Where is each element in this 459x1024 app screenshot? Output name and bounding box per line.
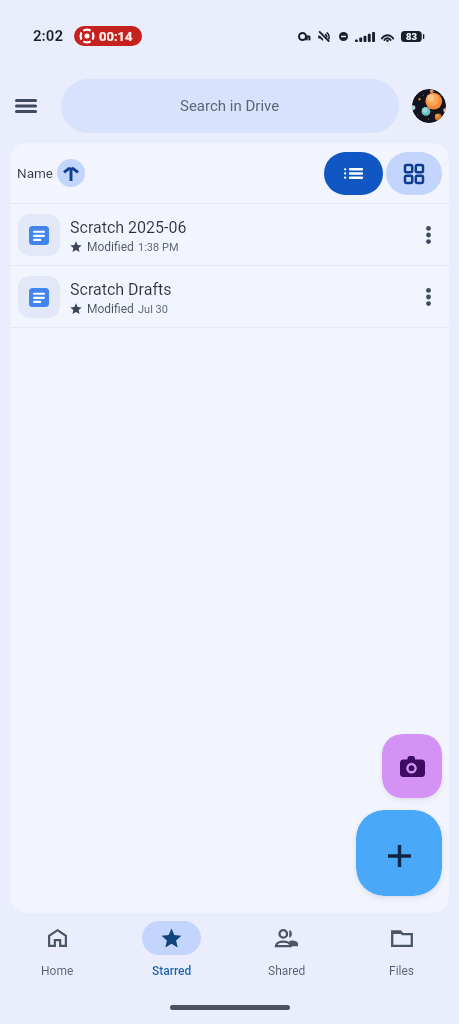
button[interactable]: List view bbox=[324, 152, 383, 195]
button[interactable]: Open navigation drawer bbox=[2, 82, 50, 130]
staticText: Starred bbox=[152, 964, 192, 978]
staticText: 83 bbox=[406, 31, 417, 42]
button[interactable]: Create new file bbox=[356, 810, 442, 896]
staticText: Scratch 2025-06 bbox=[70, 218, 187, 237]
button[interactable]: Grid view bbox=[386, 152, 442, 195]
button[interactable]: Account bbox=[412, 89, 446, 123]
button[interactable]: Scan document with camera bbox=[382, 734, 442, 798]
button[interactable]: Files bbox=[344, 913, 459, 986]
button[interactable]: Scratch Drafts bbox=[10, 266, 449, 327]
button[interactable]: Scratch 2025-06 bbox=[10, 204, 449, 265]
staticText: Scratch Drafts bbox=[70, 280, 172, 299]
button[interactable]: Search in Drive bbox=[61, 79, 399, 133]
staticText: Modified bbox=[87, 302, 134, 316]
staticText: Modified bbox=[87, 240, 134, 254]
staticText: 2:02 bbox=[33, 27, 64, 45]
button[interactable]: Shared bbox=[229, 913, 344, 986]
button[interactable]: Home bbox=[0, 913, 114, 986]
staticText: 1:38 PM bbox=[138, 241, 179, 254]
button[interactable]: Name bbox=[10, 155, 89, 191]
button[interactable]: Starred bbox=[114, 913, 229, 986]
staticText: Jul 30 bbox=[138, 303, 168, 316]
staticText: 00:14 bbox=[99, 29, 133, 44]
button[interactable]: More options bbox=[407, 276, 449, 318]
staticText: Shared bbox=[268, 964, 306, 978]
staticText: Home bbox=[41, 964, 74, 978]
staticText: Files bbox=[389, 964, 415, 978]
staticText: Search in Drive bbox=[180, 97, 280, 115]
staticText: Name bbox=[17, 165, 53, 181]
button[interactable]: More options bbox=[407, 214, 449, 256]
